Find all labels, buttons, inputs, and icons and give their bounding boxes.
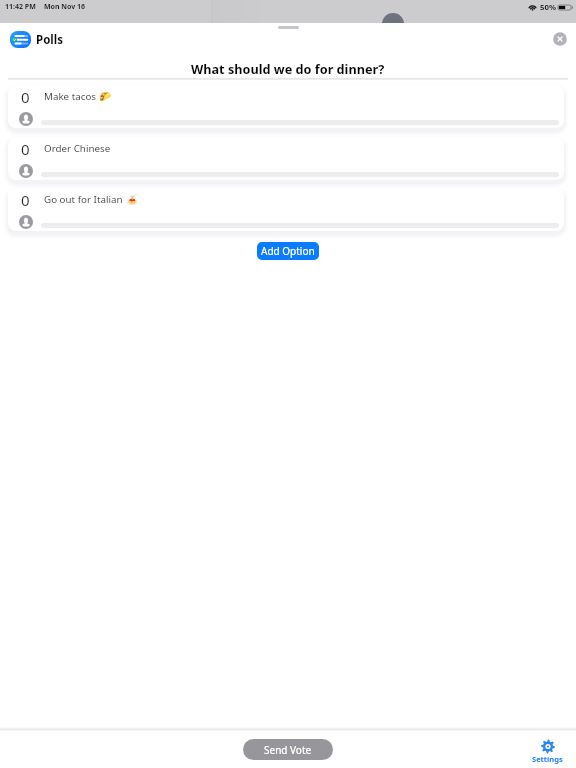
button[interactable]: Add Option bbox=[257, 242, 319, 260]
button[interactable]: 0 bbox=[8, 137, 564, 180]
staticText: Mon Nov 16 bbox=[44, 2, 86, 12]
button[interactable]: Send Vote bbox=[240, 736, 336, 763]
staticText: Add Option bbox=[261, 244, 315, 258]
staticText: Settings bbox=[532, 754, 563, 764]
staticText: Make tacos bbox=[44, 90, 99, 103]
staticText: Polls bbox=[36, 32, 63, 48]
staticText: What should we do for dinner? bbox=[191, 60, 385, 77]
staticText: Go out for Italian bbox=[44, 193, 126, 206]
button[interactable]: Settings bbox=[529, 735, 566, 764]
staticText: 0 bbox=[21, 87, 30, 107]
staticText: 50% bbox=[540, 2, 556, 13]
staticText: 0 bbox=[21, 190, 30, 210]
staticText: Send Vote bbox=[264, 743, 312, 757]
staticText: 🍝 bbox=[126, 194, 139, 205]
button[interactable]: 0 bbox=[8, 188, 564, 231]
staticText: 0 bbox=[21, 139, 30, 159]
staticText: 🌮 bbox=[99, 91, 112, 102]
button[interactable]: 0 bbox=[8, 85, 564, 128]
staticText: Order Chinese bbox=[44, 142, 111, 155]
button[interactable]: Close bbox=[550, 29, 570, 49]
staticText: 11:42 PM bbox=[5, 2, 36, 12]
